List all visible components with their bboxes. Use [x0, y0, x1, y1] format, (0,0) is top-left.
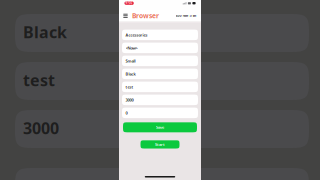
button[interactable]: ADD NEW ITEM — [176, 14, 197, 17]
staticText: 3000 — [23, 117, 59, 139]
button[interactable]: test — [122, 82, 198, 92]
staticText: Start — [155, 142, 165, 147]
staticText: test — [23, 69, 55, 91]
button[interactable]: Small — [122, 56, 198, 66]
button[interactable]: 3000 — [122, 95, 198, 105]
staticText: <Now> — [125, 45, 137, 50]
button[interactable]: 0 — [122, 108, 198, 118]
staticText: Save — [156, 125, 164, 130]
button[interactable]: Menu — [123, 10, 128, 21]
button[interactable]: <Now> — [122, 43, 198, 53]
staticText: Accessories — [125, 32, 147, 37]
staticText: test — [125, 84, 133, 89]
staticText: 9:56 — [126, 1, 133, 5]
button[interactable]: Accessories — [122, 30, 198, 40]
staticText: Black — [125, 71, 135, 76]
staticText: Black — [23, 21, 67, 43]
staticText: ADD NEW ITEM — [176, 14, 197, 17]
button[interactable]: Black — [122, 69, 198, 79]
staticText: Small — [125, 58, 135, 63]
button[interactable]: Save — [123, 122, 197, 132]
button[interactable]: Start — [140, 140, 179, 148]
staticText: 0 — [125, 110, 127, 115]
staticText: Browser — [132, 11, 159, 20]
staticText: 3000 — [125, 97, 133, 102]
